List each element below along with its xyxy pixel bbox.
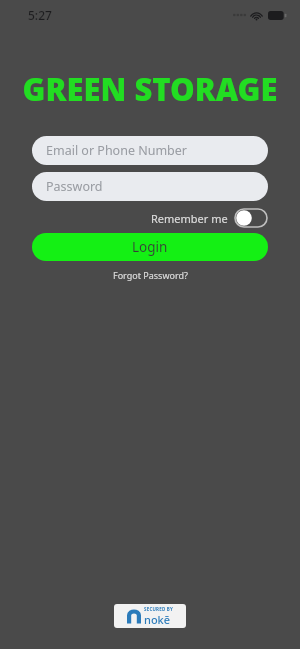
button[interactable]: Password <box>32 172 268 201</box>
button[interactable]: Forgot Password? <box>107 267 194 283</box>
staticText: nokē <box>144 612 171 627</box>
staticText: 5:27 <box>28 7 52 23</box>
staticText: Login <box>132 238 168 256</box>
button[interactable]: Secured by Noke <box>114 604 186 628</box>
button[interactable]: Email or Phone Number <box>32 136 268 165</box>
button[interactable]: Login <box>32 233 268 261</box>
staticText: Email or Phone Number <box>46 142 188 159</box>
staticText: SECURED BY <box>144 606 174 612</box>
staticText: Remember me <box>151 211 228 226</box>
staticText: Password <box>46 178 103 195</box>
staticText: GREEN STORAGE <box>0 68 300 110</box>
button[interactable]: Remember me <box>151 209 267 227</box>
